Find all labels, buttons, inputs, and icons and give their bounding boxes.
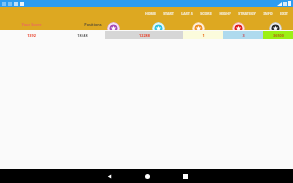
button[interactable]: SCORE [199, 10, 213, 17]
staticText: LAST 5 [181, 11, 193, 16]
staticText: START [163, 11, 174, 16]
button[interactable]: Home [136, 169, 158, 183]
staticText: 18/48 [77, 33, 88, 38]
button[interactable]: 18/48 [62, 31, 102, 39]
staticText: INFO [263, 11, 273, 16]
button[interactable]: EXIT [279, 10, 289, 17]
staticText: EXIT [280, 11, 288, 16]
button[interactable]: Badge 4 [232, 22, 245, 35]
button[interactable]: STRATEGY [237, 10, 257, 17]
button[interactable]: Badge 3 [192, 22, 205, 35]
button[interactable]: Badge 5 [269, 22, 282, 35]
staticText: 12288 [139, 33, 150, 38]
button[interactable]: START [162, 10, 175, 17]
button[interactable]: Badge 2 [152, 22, 165, 35]
button[interactable]: HIGH? [218, 10, 232, 17]
staticText: 3 [242, 33, 245, 38]
button[interactable]: Back [98, 169, 120, 183]
staticText: SCORE [200, 11, 212, 16]
button[interactable]: 36500 [263, 31, 293, 39]
button[interactable]: Badge 1 [107, 22, 120, 35]
staticText: 36500 [273, 33, 284, 38]
staticText: Positions [84, 22, 102, 27]
staticText: HIGH? [219, 11, 231, 16]
staticText: Your Score [21, 22, 42, 27]
button[interactable]: HOME [144, 10, 157, 17]
button[interactable]: Recent apps [174, 169, 196, 183]
staticText: 1392 [27, 33, 36, 38]
button[interactable]: INFO [262, 10, 274, 17]
staticText: HOME [145, 11, 156, 16]
staticText: STRATEGY [238, 11, 256, 16]
button[interactable]: 12288 [105, 31, 183, 39]
button[interactable]: 1 [183, 31, 223, 39]
button[interactable]: 1392 [0, 31, 62, 39]
button[interactable]: LAST 5 [180, 10, 194, 17]
button[interactable]: 3 [223, 31, 263, 39]
staticText: 1 [202, 33, 205, 38]
